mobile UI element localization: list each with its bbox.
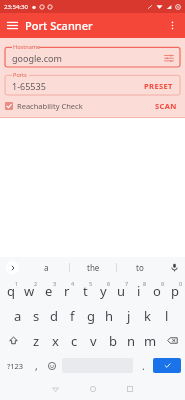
staticText: google.com [12, 52, 62, 64]
staticText: 8 [143, 280, 147, 287]
staticText: p [171, 282, 179, 300]
button[interactable]: PRESET [141, 79, 176, 93]
button[interactable]: Open navigation menu [0, 13, 25, 38]
button[interactable]: f [63, 303, 81, 328]
staticText: h [105, 307, 114, 325]
button[interactable]: Expand suggestions [0, 257, 24, 278]
button[interactable]: Shift [0, 328, 26, 353]
button[interactable]: j [119, 303, 138, 328]
staticText: 23:54:30 [4, 3, 28, 11]
staticText: s [33, 307, 40, 325]
button[interactable]: y [94, 278, 112, 303]
staticText: 1-65535 [12, 80, 46, 92]
button[interactable]: k [138, 303, 157, 328]
button[interactable]: u [112, 278, 130, 303]
staticText: j [127, 307, 131, 325]
button[interactable]: b [103, 328, 122, 353]
staticText: q [7, 282, 15, 300]
button[interactable]: t [76, 278, 94, 303]
button[interactable]: x [46, 328, 65, 353]
button[interactable]: Advanced options [162, 51, 176, 65]
staticText: y [100, 282, 107, 300]
staticText: c [71, 332, 78, 350]
button[interactable]: c [65, 328, 84, 353]
staticText: 2 [34, 280, 38, 287]
staticText: SCAN [155, 101, 177, 111]
staticText: d [50, 307, 58, 325]
button[interactable]: q [1, 278, 20, 303]
staticText: n [127, 332, 136, 350]
staticText: r [64, 282, 70, 300]
staticText: 7 [125, 280, 129, 287]
staticText: k [144, 307, 151, 325]
staticText: 4 [71, 280, 75, 287]
staticText: i [137, 282, 141, 300]
staticText: u [117, 282, 126, 300]
staticText: a [44, 262, 49, 273]
staticText: f [70, 307, 75, 325]
staticText: ?123 [7, 361, 24, 371]
button[interactable]: Backspace [160, 328, 185, 353]
staticText: 5 [89, 280, 93, 287]
button[interactable]: More options [160, 13, 185, 38]
button[interactable]: to [117, 257, 163, 278]
button[interactable]: m [141, 328, 160, 353]
button[interactable]: v [84, 328, 103, 353]
staticText: a [14, 307, 22, 325]
button[interactable]: r [58, 278, 76, 303]
button[interactable]: Home [74, 378, 111, 400]
button[interactable]: Recent apps [111, 378, 148, 400]
button[interactable]: d [45, 303, 63, 328]
staticText: , [35, 359, 38, 373]
button[interactable]: , [28, 355, 44, 376]
button[interactable]: l [157, 303, 176, 328]
staticText: . [142, 359, 145, 373]
button[interactable]: Enter [153, 358, 181, 373]
button[interactable]: . [135, 355, 151, 376]
button[interactable]: ?123 [2, 355, 28, 376]
button[interactable]: a [9, 303, 27, 328]
button[interactable]: s [27, 303, 45, 328]
staticText: x [52, 332, 59, 350]
staticText: Reachability Check [17, 101, 83, 111]
button[interactable]: w [20, 278, 39, 303]
button[interactable]: o [148, 278, 166, 303]
button[interactable]: z [26, 328, 46, 353]
button[interactable]: Reachability Check [5, 101, 87, 111]
staticText: PRESET [144, 81, 173, 91]
staticText: 9 [161, 280, 165, 287]
button[interactable]: the [70, 257, 116, 278]
staticText: Port Scanner [25, 18, 93, 33]
staticText: 0 [179, 280, 183, 287]
staticText: e [45, 282, 53, 300]
button[interactable]: Back [37, 378, 74, 400]
button[interactable]: p [166, 278, 184, 303]
staticText: b [109, 332, 117, 350]
staticText: v [90, 332, 97, 350]
button[interactable]: e [39, 278, 58, 303]
staticText: o [153, 282, 161, 300]
button[interactable]: a [24, 257, 69, 278]
staticText: g [87, 307, 95, 325]
staticText: m [144, 332, 157, 350]
staticText: 6 [107, 280, 111, 287]
staticText: 1 [15, 280, 19, 287]
button[interactable]: h [100, 303, 119, 328]
staticText: Hostname [13, 43, 41, 51]
staticText: t [83, 282, 88, 300]
staticText: l [165, 307, 169, 325]
button[interactable]: Emoji [44, 355, 60, 376]
button[interactable]: n [122, 328, 141, 353]
staticText: z [33, 332, 40, 350]
button[interactable]: g [81, 303, 100, 328]
staticText: w [24, 282, 35, 300]
staticText: 3 [53, 280, 57, 287]
staticText: the [87, 262, 100, 273]
staticText: to [136, 262, 144, 273]
button[interactable]: SCAN [152, 99, 180, 113]
button[interactable]: Voice input [163, 257, 185, 278]
button[interactable]: i [130, 278, 148, 303]
staticText: Ports [13, 71, 27, 79]
